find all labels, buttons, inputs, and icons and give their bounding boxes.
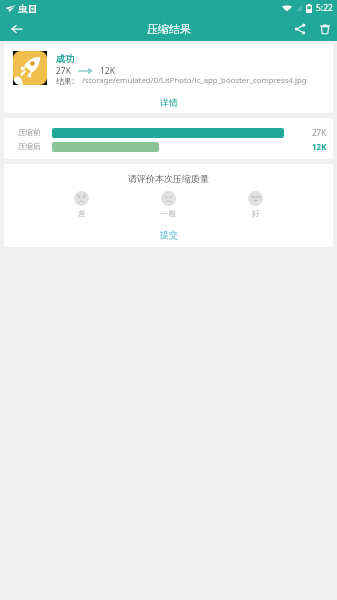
button[interactable]: Back bbox=[4, 16, 29, 41]
staticText: 差 bbox=[78, 209, 86, 218]
staticText: 提交 bbox=[160, 229, 178, 240]
staticText: 12K bbox=[312, 141, 327, 152]
button[interactable]: 一般 bbox=[161, 191, 176, 218]
staticText: 请评价本次压缩质量 bbox=[128, 173, 209, 184]
staticText: 详情 bbox=[160, 97, 178, 108]
staticText: 压缩后 bbox=[18, 142, 41, 151]
button[interactable]: Share bbox=[287, 16, 312, 41]
staticText: 结果: bbox=[56, 75, 75, 86]
staticText: /storage/emulated/0/LitPhoto/ic_app_boos… bbox=[82, 75, 307, 86]
staticText: 压缩结果 bbox=[147, 22, 191, 36]
button[interactable]: Delete bbox=[312, 16, 337, 41]
staticText: 5:22 bbox=[316, 2, 333, 14]
staticText: 27K bbox=[312, 127, 327, 138]
staticText: 27K bbox=[56, 65, 71, 77]
button[interactable]: 详情 bbox=[4, 88, 333, 113]
staticText: 成功 bbox=[56, 53, 74, 64]
button[interactable]: 好 bbox=[248, 191, 263, 218]
button[interactable]: 差 bbox=[74, 191, 89, 218]
staticText: 一般 bbox=[161, 209, 176, 218]
staticText: 好 bbox=[252, 209, 260, 218]
button[interactable]: 提交 bbox=[4, 227, 333, 241]
staticText: 12K bbox=[100, 65, 115, 77]
staticText: 压缩前 bbox=[18, 128, 41, 137]
staticText: 虫 bbox=[18, 3, 27, 14]
